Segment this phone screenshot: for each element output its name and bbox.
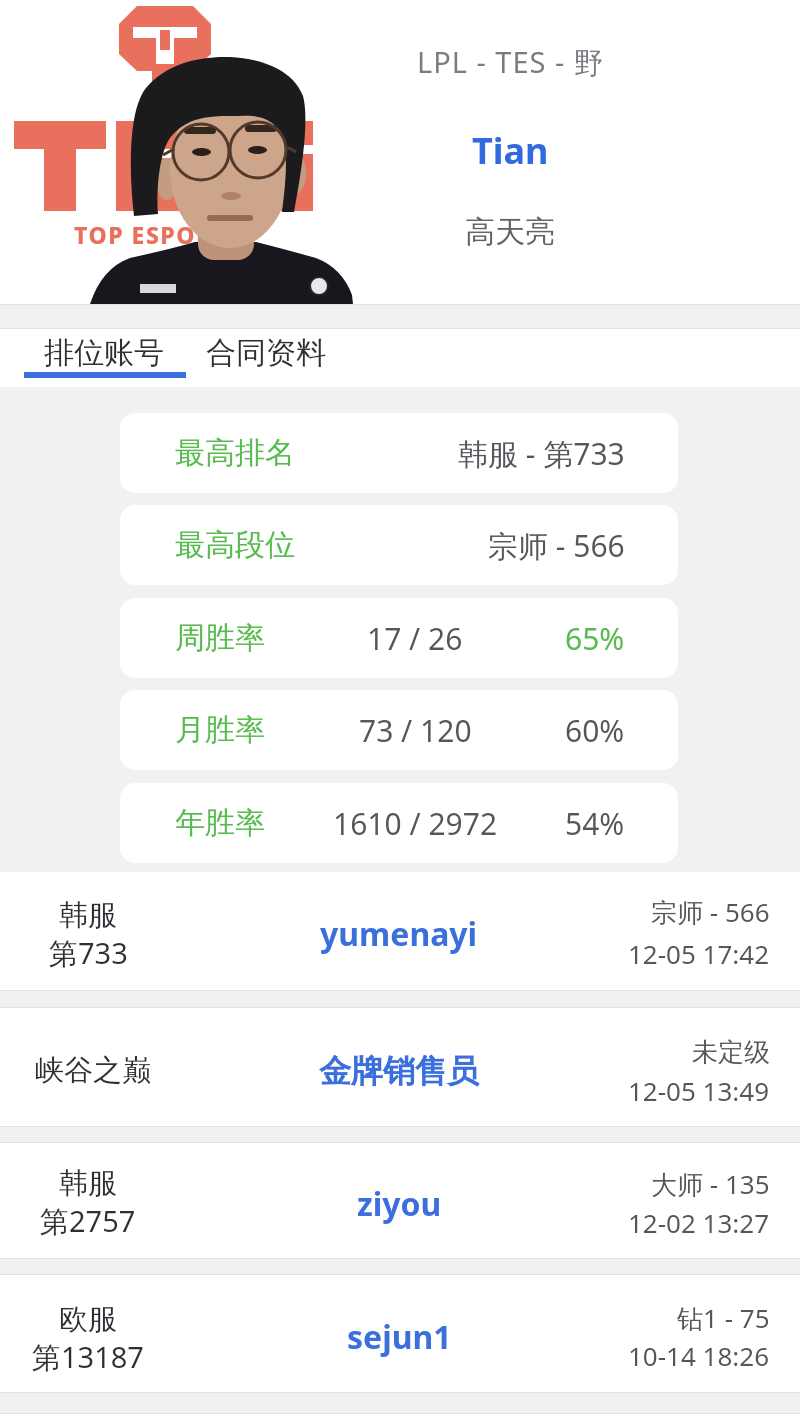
button[interactable] [0,1143,800,1258]
staticText: 峡谷之巅 [35,1052,151,1089]
button[interactable]: 最高排名 [120,413,678,493]
button[interactable]: 周胜率 [120,598,678,678]
staticText: 未定级 [692,1036,770,1069]
button[interactable] [0,872,800,990]
staticText: 12-05 17:42 [628,936,770,971]
staticText: 年胜率 [175,804,265,842]
staticText: 周胜率 [175,619,265,657]
staticText: 韩服 [59,1165,117,1202]
staticText: 韩服 - 第733 [458,433,625,474]
staticText: 韩服 [59,897,117,934]
staticText: 73 / 120 [359,710,472,751]
staticText: 第733 [49,933,128,973]
staticText: 1610 / 2972 [333,803,498,844]
staticText: 65% [565,618,625,659]
staticText: 第2757 [40,1201,136,1241]
staticText: LPL - TES - 野 [417,42,604,82]
button[interactable]: 合同资料 [196,329,336,376]
staticText: 排位账号 [44,334,164,372]
staticText: 60% [565,710,625,751]
staticText: 合同资料 [206,334,326,372]
staticText: 17 / 26 [367,618,463,659]
staticText: 最高段位 [175,526,295,564]
staticText: Tian [472,126,549,170]
staticText: ziyou [357,1182,442,1226]
button[interactable] [0,1275,800,1392]
staticText: 月胜率 [175,711,265,749]
staticText: yumenayi [320,912,478,956]
staticText: TOP ESPORTS [74,219,243,247]
staticText: 欧服 [59,1301,117,1338]
staticText: 10-14 18:26 [628,1338,770,1373]
staticText: 54% [565,803,625,844]
button[interactable]: 月胜率 [120,690,678,770]
staticText: 12-05 13:49 [628,1073,770,1108]
staticText: 钻1 - 75 [677,1300,770,1336]
staticText: 金牌销售员 [319,1051,479,1091]
staticText: 12-02 13:27 [628,1205,770,1240]
button[interactable]: 最高段位 [120,505,678,585]
button[interactable] [0,1008,800,1126]
staticText: 第13187 [32,1337,144,1377]
staticText: 高天亮 [465,213,555,251]
button[interactable]: 排位账号 [30,329,178,376]
staticText: 大师 - 135 [651,1166,770,1202]
staticText: 宗师 - 566 [488,525,625,566]
staticText: sejun1 [347,1315,452,1359]
staticText: 最高排名 [175,434,295,472]
staticText: 宗师 - 566 [651,894,770,930]
button[interactable]: 年胜率 [120,783,678,863]
